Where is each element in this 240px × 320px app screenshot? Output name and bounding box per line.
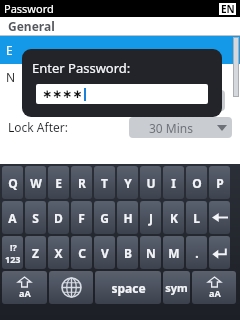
- staticText: M: [168, 245, 180, 261]
- staticText: Password: [4, 1, 54, 16]
- button[interactable]: E: [48, 166, 69, 199]
- button[interactable]: T: [94, 166, 115, 199]
- button[interactable]: R: [71, 166, 92, 199]
- button[interactable]: S: [25, 201, 46, 234]
- staticText: aA: [19, 287, 31, 299]
- staticText: Z: [32, 245, 39, 261]
- button[interactable]: U: [140, 166, 161, 199]
- button[interactable]: sym: [163, 271, 190, 304]
- button[interactable]: L: [186, 201, 207, 234]
- button[interactable]: Z: [25, 236, 46, 269]
- button[interactable]: W: [25, 166, 46, 199]
- button[interactable]: Change language: [49, 271, 93, 304]
- staticText: V: [101, 245, 109, 261]
- staticText: space: [111, 280, 146, 296]
- staticText: W: [30, 175, 42, 191]
- button[interactable]: 30 Mins: [129, 117, 232, 138]
- button[interactable]: N: [140, 236, 161, 269]
- staticText: B: [124, 245, 132, 261]
- button[interactable]: X: [48, 236, 69, 269]
- staticText: S: [32, 210, 39, 226]
- staticText: !?: [10, 241, 17, 253]
- button[interactable]: Numbers and symbols: [2, 236, 23, 269]
- staticText: X: [54, 245, 63, 261]
- staticText: 123: [5, 253, 21, 265]
- staticText: Y: [124, 175, 132, 191]
- button[interactable]: H: [117, 201, 138, 234]
- button[interactable]: Lock After:: [0, 115, 240, 139]
- staticText: E: [6, 42, 13, 58]
- button[interactable]: D: [48, 201, 69, 234]
- staticText: A: [8, 210, 17, 226]
- staticText: N: [6, 69, 16, 85]
- staticText: U: [146, 175, 156, 191]
- button[interactable]: Enter: [209, 236, 230, 269]
- staticText: C: [78, 245, 86, 261]
- staticText: Q: [8, 175, 18, 191]
- staticText: F: [78, 210, 85, 226]
- staticText: L: [193, 210, 200, 226]
- button[interactable]: Backspace: [209, 201, 230, 234]
- staticText: O: [192, 175, 202, 191]
- button[interactable]: J: [140, 201, 161, 234]
- staticText: E: [55, 175, 62, 191]
- button[interactable]: 10: [125, 90, 225, 111]
- staticText: K: [170, 210, 178, 226]
- button[interactable]: space: [95, 271, 161, 304]
- staticText: R: [78, 175, 86, 191]
- staticText: N: [146, 245, 156, 261]
- button[interactable]: F: [71, 201, 92, 234]
- staticText: EN: [221, 2, 235, 16]
- staticText: 30 Mins: [149, 120, 193, 136]
- button[interactable]: K: [163, 201, 184, 234]
- staticText: 10: [158, 93, 172, 109]
- button[interactable]: Input language EN: [218, 2, 237, 16]
- button[interactable]: E: [0, 36, 240, 64]
- button[interactable]: Shift: [2, 271, 47, 304]
- button[interactable]: C: [71, 236, 92, 269]
- staticText: G: [100, 210, 109, 226]
- staticText: aA: [209, 287, 221, 299]
- button[interactable]: I: [163, 166, 184, 199]
- staticText: H: [123, 210, 133, 226]
- staticText: sym: [165, 280, 188, 295]
- button[interactable]: O: [186, 166, 207, 199]
- button[interactable]: V: [94, 236, 115, 269]
- button[interactable]: M: [163, 236, 184, 269]
- button[interactable]: Password field: [36, 84, 208, 104]
- staticText: .: [195, 245, 199, 261]
- button[interactable]: A: [2, 201, 23, 234]
- staticText: Lock After:: [8, 119, 68, 135]
- staticText: D: [54, 210, 63, 226]
- button[interactable]: Y: [117, 166, 138, 199]
- button[interactable]: 10: [0, 89, 240, 111]
- button[interactable]: .: [186, 236, 207, 269]
- button[interactable]: B: [117, 236, 138, 269]
- button[interactable]: G: [94, 201, 115, 234]
- staticText: T: [101, 175, 108, 191]
- staticText: I: [171, 175, 176, 191]
- staticText: J: [149, 210, 153, 226]
- staticText: P: [216, 175, 224, 191]
- staticText: Enter Password:: [32, 59, 131, 77]
- staticText: ∗∗∗∗: [42, 87, 83, 101]
- button[interactable]: P: [209, 166, 230, 199]
- button[interactable]: Q: [2, 166, 23, 199]
- staticText: General: [8, 18, 55, 34]
- button[interactable]: Shift right: [192, 271, 236, 304]
